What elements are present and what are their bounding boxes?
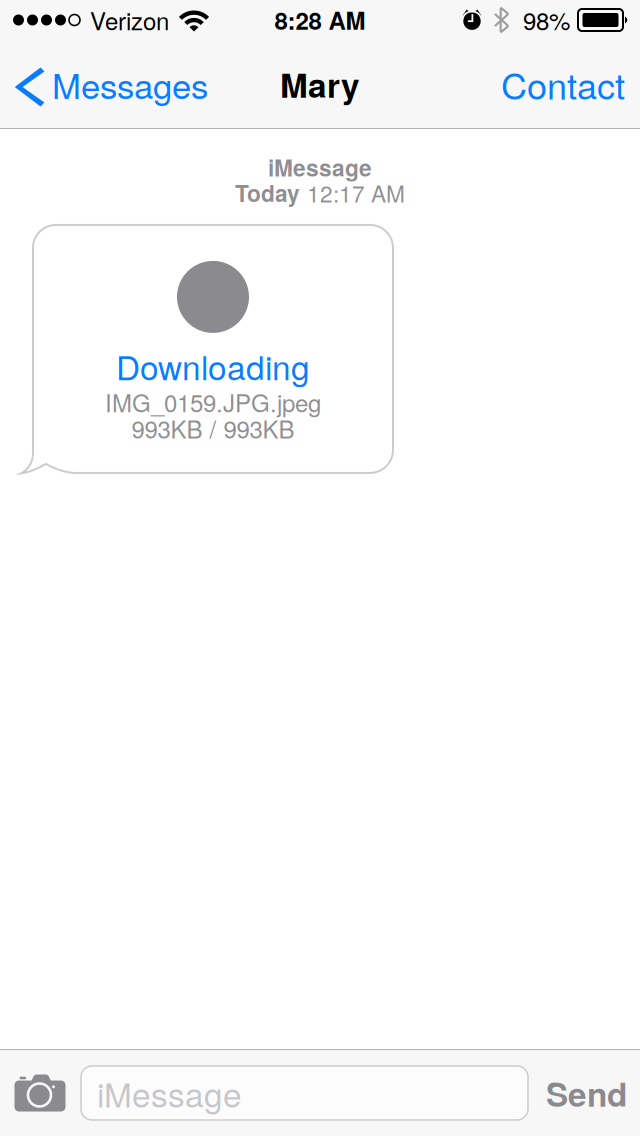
staticText: 98%	[523, 3, 570, 37]
staticText: 12:17 AM	[307, 176, 405, 209]
staticText: IMG_0159.JPG.jpeg	[105, 385, 321, 419]
staticText: Messages	[52, 59, 208, 109]
staticText: Today	[235, 176, 300, 209]
staticText: 993KB / 993KB	[131, 411, 294, 445]
staticText: Contact	[501, 58, 625, 110]
staticText: 8:28 AM	[274, 3, 365, 37]
staticText: Send	[546, 1069, 627, 1117]
staticText: iMessage	[97, 1069, 242, 1117]
button[interactable]: iMessage	[81, 1066, 528, 1120]
button[interactable]: Contact	[485, 40, 640, 128]
staticText: Mary	[280, 60, 360, 108]
button[interactable]: Messages	[0, 40, 218, 128]
button[interactable]: Send	[528, 1050, 640, 1136]
staticText: iMessage	[268, 151, 372, 183]
staticText: Downloading	[116, 342, 310, 390]
staticText: Verizon	[90, 3, 169, 37]
button[interactable]: Take photo	[0, 1050, 81, 1136]
